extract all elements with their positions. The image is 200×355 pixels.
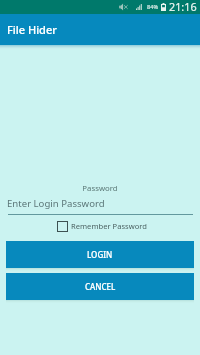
other: Battery 84 percent (161, 3, 166, 11)
staticText: 84% (147, 3, 159, 11)
staticText: Password (0, 183, 200, 194)
staticText: Remember Password (71, 221, 147, 231)
staticText: Enter Login Password (7, 197, 105, 210)
staticText: File Hider (7, 22, 57, 37)
other: Signal strength (136, 4, 142, 10)
staticText: 21:16 (169, 0, 197, 13)
staticText: CANCEL (85, 281, 116, 292)
button[interactable]: CANCEL (6, 273, 194, 300)
staticText: LOGIN (87, 249, 113, 260)
button[interactable]: LOGIN (6, 241, 194, 268)
button[interactable]: Remember Password (57, 220, 147, 232)
button[interactable]: Enter Login Password (8, 195, 193, 216)
other: Sound off (119, 3, 128, 11)
